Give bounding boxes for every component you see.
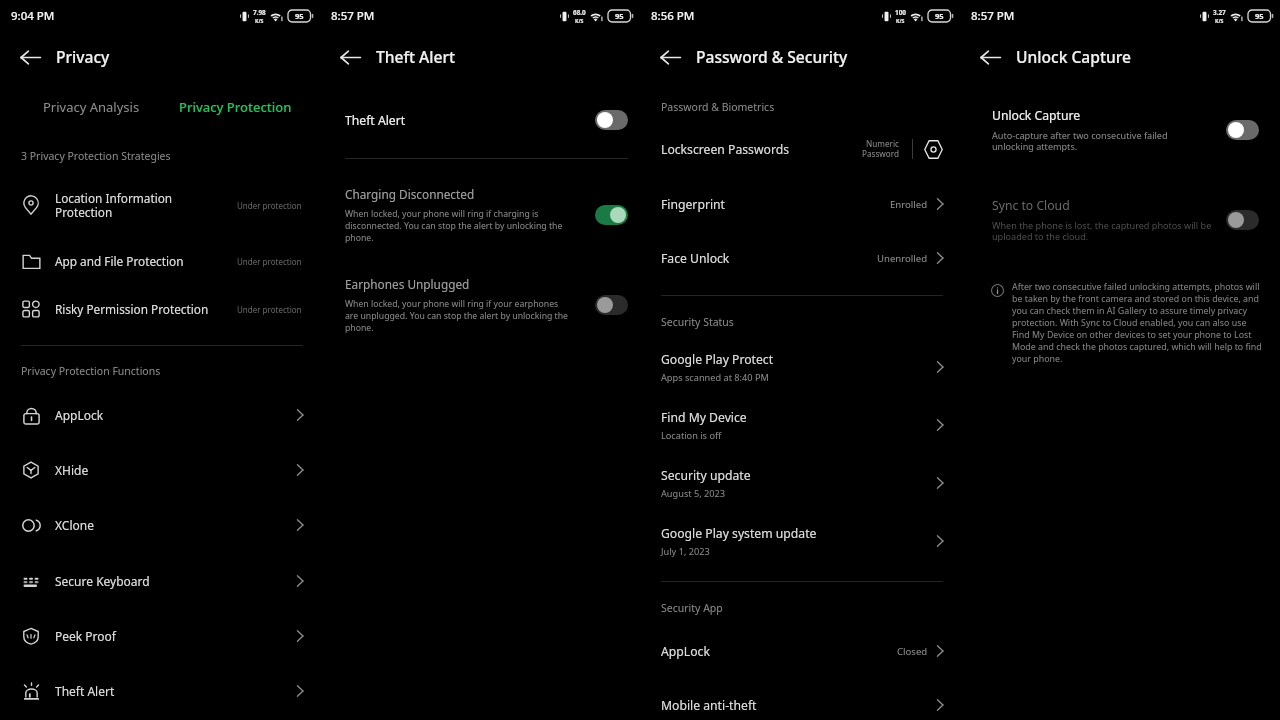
staticText: Theft Alert	[376, 46, 456, 67]
staticText: XClone	[55, 517, 289, 533]
staticText: Apps scanned at 8:40 PM	[661, 371, 769, 384]
button[interactable]: Google Play system update	[640, 519, 960, 563]
staticText: July 1, 2023	[661, 545, 710, 558]
staticText: Unenrolled	[877, 252, 928, 265]
button[interactable]: XHide	[0, 448, 320, 492]
staticText: Sync to Cloud	[992, 197, 1070, 214]
button[interactable]: Charging Disconnected switch	[595, 205, 628, 225]
staticText: Under protection	[237, 200, 302, 211]
staticText: Auto-capture after two consecutive faile…	[992, 129, 1214, 153]
staticText: Security Status	[661, 315, 734, 329]
staticText: When the phone is lost, the captured pho…	[992, 219, 1214, 243]
staticText: Password & Biometrics	[661, 100, 775, 114]
staticText: 95	[615, 11, 624, 21]
staticText: Face Unlock	[661, 250, 877, 267]
staticText: Theft Alert	[55, 683, 289, 699]
staticText: Unlock Capture	[1016, 46, 1131, 67]
staticText: Security update	[661, 467, 751, 484]
staticText: AppLock	[661, 643, 897, 660]
button[interactable]: Google Play Protect	[640, 345, 960, 389]
button[interactable]: AppLock	[640, 629, 960, 673]
staticText: Fingerprint	[661, 196, 890, 213]
staticText: Privacy Protection Functions	[21, 364, 161, 378]
staticText: 100	[895, 8, 906, 17]
staticText: Numeric Password	[861, 138, 899, 160]
staticText: 95	[1255, 11, 1264, 21]
button[interactable]: Location Information Protection	[0, 183, 320, 227]
button[interactable]: Unlock Capture switch	[1226, 120, 1259, 140]
button[interactable]: Earphones Unplugged switch	[595, 295, 628, 315]
staticText: 68.0	[573, 8, 586, 17]
button[interactable]: Privacy Protection	[163, 97, 308, 117]
button[interactable]: AppLock	[0, 393, 320, 437]
staticText: Peek Proof	[55, 628, 289, 644]
staticText: Password & Security	[696, 46, 848, 67]
staticText: 8:57 PM	[971, 8, 1015, 24]
staticText: 3.27	[1213, 8, 1226, 17]
staticText: XHide	[55, 462, 289, 478]
button[interactable]: Privacy Analysis	[27, 97, 156, 117]
staticText: K/S	[896, 17, 905, 24]
staticText: Closed	[897, 645, 928, 658]
staticText: Under protection	[237, 304, 302, 315]
staticText: Under protection	[237, 256, 302, 267]
button[interactable]: Unlock Capture	[960, 107, 1280, 153]
staticText: Charging Disconnected	[345, 186, 475, 202]
staticText: K/S	[1215, 17, 1224, 24]
staticText: When locked, your phone will ring if you…	[345, 298, 569, 334]
button[interactable]: Security update	[640, 461, 960, 505]
staticText: Unlock Capture	[992, 107, 1081, 124]
button[interactable]: Charging Disconnected	[320, 186, 640, 244]
staticText: Find My Device	[661, 409, 747, 426]
button[interactable]: Back	[652, 39, 688, 75]
button[interactable]: Sync to Cloud	[960, 197, 1280, 243]
button[interactable]: Risky Permission Protection	[0, 287, 320, 331]
staticText: Security App	[661, 601, 723, 615]
button[interactable]: Peek Proof	[0, 614, 320, 658]
staticText: 9:04 PM	[11, 8, 55, 24]
button[interactable]: Theft Alert	[320, 99, 640, 141]
button[interactable]: Mobile anti-theft	[640, 683, 960, 720]
button[interactable]: Find My Device	[640, 403, 960, 447]
staticText: 8:56 PM	[651, 8, 695, 24]
staticText: August 5, 2023	[661, 487, 726, 500]
staticText: App and File Protection	[55, 253, 237, 269]
staticText: 8:57 PM	[331, 8, 375, 24]
staticText: Earphones Unplugged	[345, 276, 470, 292]
button[interactable]: Back	[332, 39, 368, 75]
button[interactable]: Theft Alert	[0, 669, 320, 713]
staticText: Enrolled	[890, 198, 928, 211]
staticText: 95	[935, 11, 944, 21]
staticText: K/S	[575, 17, 584, 24]
button[interactable]: Back	[972, 39, 1008, 75]
button[interactable]: Back	[12, 39, 48, 75]
staticText: Location Information Protection	[55, 190, 237, 221]
staticText: Google Play system update	[661, 525, 817, 542]
staticText: 7.98	[253, 8, 266, 17]
button[interactable]: Password settings	[922, 138, 944, 160]
staticText: When locked, your phone will ring if cha…	[345, 208, 563, 244]
staticText: 95	[295, 11, 304, 21]
button[interactable]: XClone	[0, 503, 320, 547]
staticText: K/S	[255, 17, 264, 24]
button[interactable]: Lockscreen Passwords	[640, 127, 960, 171]
staticText: Mobile anti-theft	[661, 697, 929, 714]
staticText: Privacy	[56, 46, 110, 67]
staticText: Privacy Analysis	[43, 98, 140, 116]
staticText: Location is off	[661, 429, 722, 442]
button[interactable]: Secure Keyboard	[0, 559, 320, 603]
staticText: Secure Keyboard	[55, 573, 289, 589]
button[interactable]: Fingerprint	[640, 182, 960, 226]
button[interactable]: App and File Protection	[0, 239, 320, 283]
staticText: Google Play Protect	[661, 351, 774, 368]
button[interactable]: Earphones Unplugged	[320, 276, 640, 334]
staticText: Theft Alert	[345, 112, 595, 129]
staticText: 3 Privacy Protection Strategies	[21, 149, 171, 163]
staticText: After two consecutive failed unlocking a…	[1012, 281, 1262, 365]
button[interactable]: Theft Alert switch	[595, 110, 628, 130]
staticText: Lockscreen Passwords	[661, 141, 861, 158]
button[interactable]: Sync to Cloud switch	[1226, 210, 1259, 230]
button[interactable]: Face Unlock	[640, 236, 960, 280]
staticText: AppLock	[55, 407, 289, 423]
staticText: Risky Permission Protection	[55, 301, 237, 317]
